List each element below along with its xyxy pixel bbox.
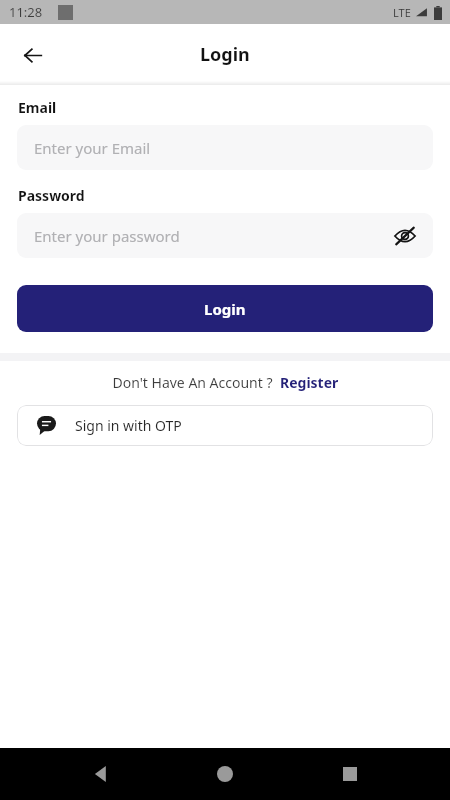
staticText: Password (18, 186, 85, 205)
button[interactable]: Back (12, 35, 52, 75)
staticText: Enter your password (34, 226, 391, 246)
button[interactable]: Sign in with OTP (17, 405, 433, 446)
staticText: Login (200, 42, 250, 67)
button[interactable]: Home (201, 750, 249, 798)
staticText: Sign in with OTP (75, 416, 182, 435)
staticText: Enter your Email (34, 138, 419, 158)
button[interactable]: Register (280, 373, 339, 392)
staticText: Register (280, 373, 339, 392)
staticText: Login (204, 299, 246, 319)
button[interactable]: Login (17, 285, 433, 332)
button[interactable]: Recent apps (326, 750, 374, 798)
button[interactable]: Enter your Email (17, 125, 433, 170)
button[interactable]: Back (77, 750, 125, 798)
staticText: 11:28 (9, 3, 43, 21)
button[interactable]: Enter your password (17, 213, 433, 258)
button[interactable]: Show password (391, 222, 419, 250)
staticText: Don't Have An Account ? (112, 373, 273, 392)
staticText: LTE (393, 5, 411, 20)
staticText: Email (18, 98, 57, 117)
